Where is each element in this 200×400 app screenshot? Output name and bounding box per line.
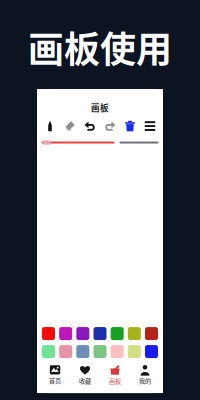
button[interactable]: Colour swatch: [59, 345, 72, 358]
button[interactable]: Colour swatch: [111, 345, 124, 358]
staticText: 画板: [109, 376, 121, 385]
button[interactable]: Colour swatch: [93, 327, 106, 340]
button[interactable]: 我的: [130, 364, 160, 386]
button[interactable]: 首页: [40, 364, 70, 386]
button[interactable]: Colour swatch: [59, 327, 72, 340]
button[interactable]: Redo: [100, 120, 120, 132]
button[interactable]: Colour swatch: [76, 345, 89, 358]
button[interactable]: Colour swatch: [128, 327, 141, 340]
button[interactable]: Colour swatch: [145, 327, 158, 340]
button[interactable]: Colour swatch: [76, 327, 89, 340]
button[interactable]: Colour swatch: [111, 327, 124, 340]
staticText: 画板使用: [28, 21, 172, 73]
button[interactable]: Colour swatch: [128, 345, 141, 358]
button[interactable]: Colour swatch: [42, 327, 55, 340]
staticText: 收藏: [79, 376, 91, 385]
button[interactable]: More: [140, 120, 160, 132]
button[interactable]: 画板: [100, 364, 130, 386]
button[interactable]: Colour swatch: [42, 345, 55, 358]
button[interactable]: 收藏: [70, 364, 100, 386]
button[interactable]: Colour swatch: [145, 345, 158, 358]
staticText: 首页: [49, 376, 61, 385]
button[interactable]: Eraser: [60, 120, 80, 132]
staticText: 画板: [91, 101, 109, 114]
button[interactable]: Pen: [40, 120, 60, 132]
button[interactable]: Undo: [80, 120, 100, 132]
staticText: 我的: [139, 376, 151, 385]
button[interactable]: Clear canvas: [120, 120, 140, 132]
button[interactable]: Colour swatch: [93, 345, 106, 358]
